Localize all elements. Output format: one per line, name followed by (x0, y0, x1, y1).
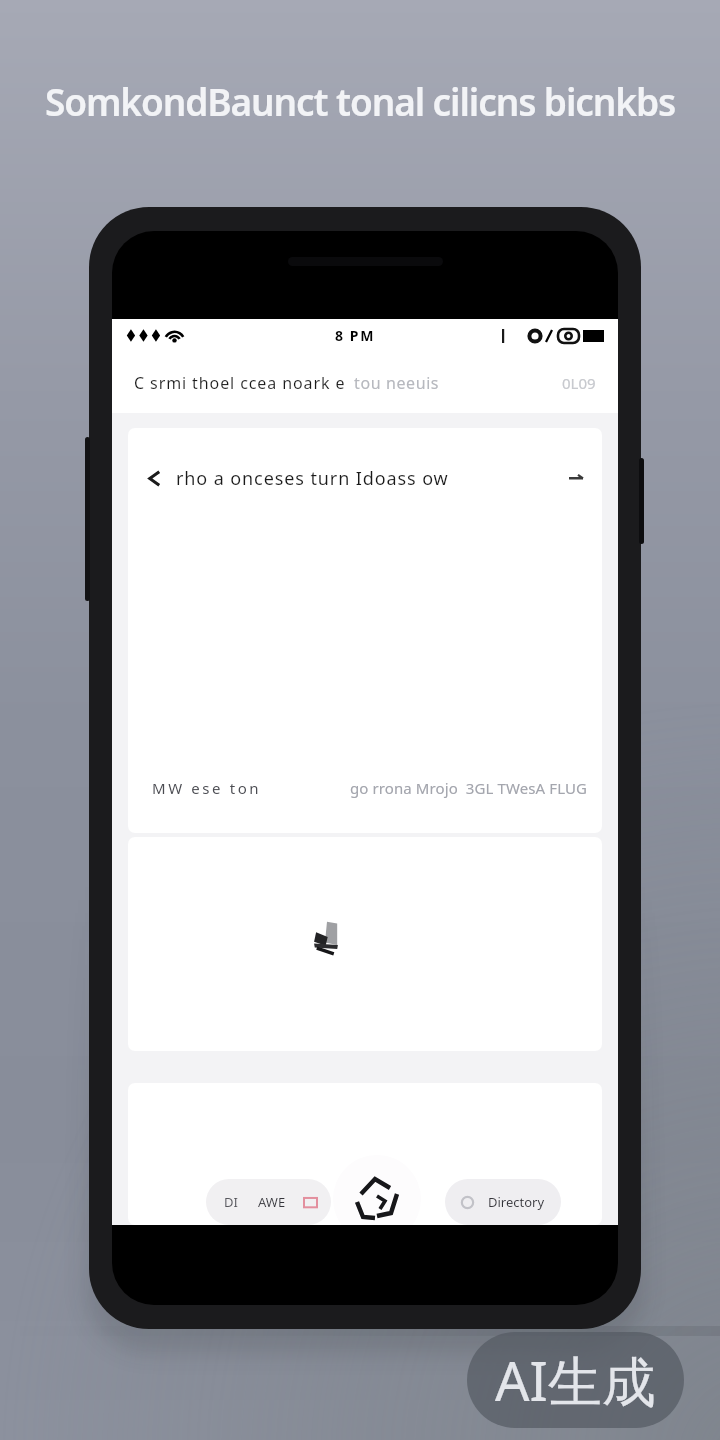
staticText: tou neeuis (354, 372, 440, 394)
other: Back (146, 470, 163, 487)
staticText: rho a onceses turn Idoass ow (176, 466, 449, 491)
staticText: C srmi thoel ccea noark e (134, 372, 346, 394)
other: More options (568, 470, 584, 486)
staticText: AWE (258, 1193, 286, 1211)
staticText: Directory (488, 1193, 545, 1211)
staticText: DI (224, 1193, 238, 1211)
button[interactable]: C srmi thoel ccea noark e (112, 352, 618, 413)
button[interactable]: Recycle (333, 1155, 421, 1225)
button[interactable]: DI (206, 1179, 331, 1225)
staticText: 8 PM (335, 326, 375, 345)
staticText: SomkondBaunct tonal cilicns bicnkbs (0, 76, 720, 126)
staticText: MW ese ton (152, 778, 262, 798)
button[interactable]: Directory (445, 1179, 561, 1225)
staticText: go rrona Mrojo 3GL TWesA FLUG (350, 778, 588, 798)
staticText: 0L09 (562, 373, 596, 393)
staticText: AI生成 (495, 1343, 656, 1417)
button[interactable]: Back (128, 428, 602, 528)
